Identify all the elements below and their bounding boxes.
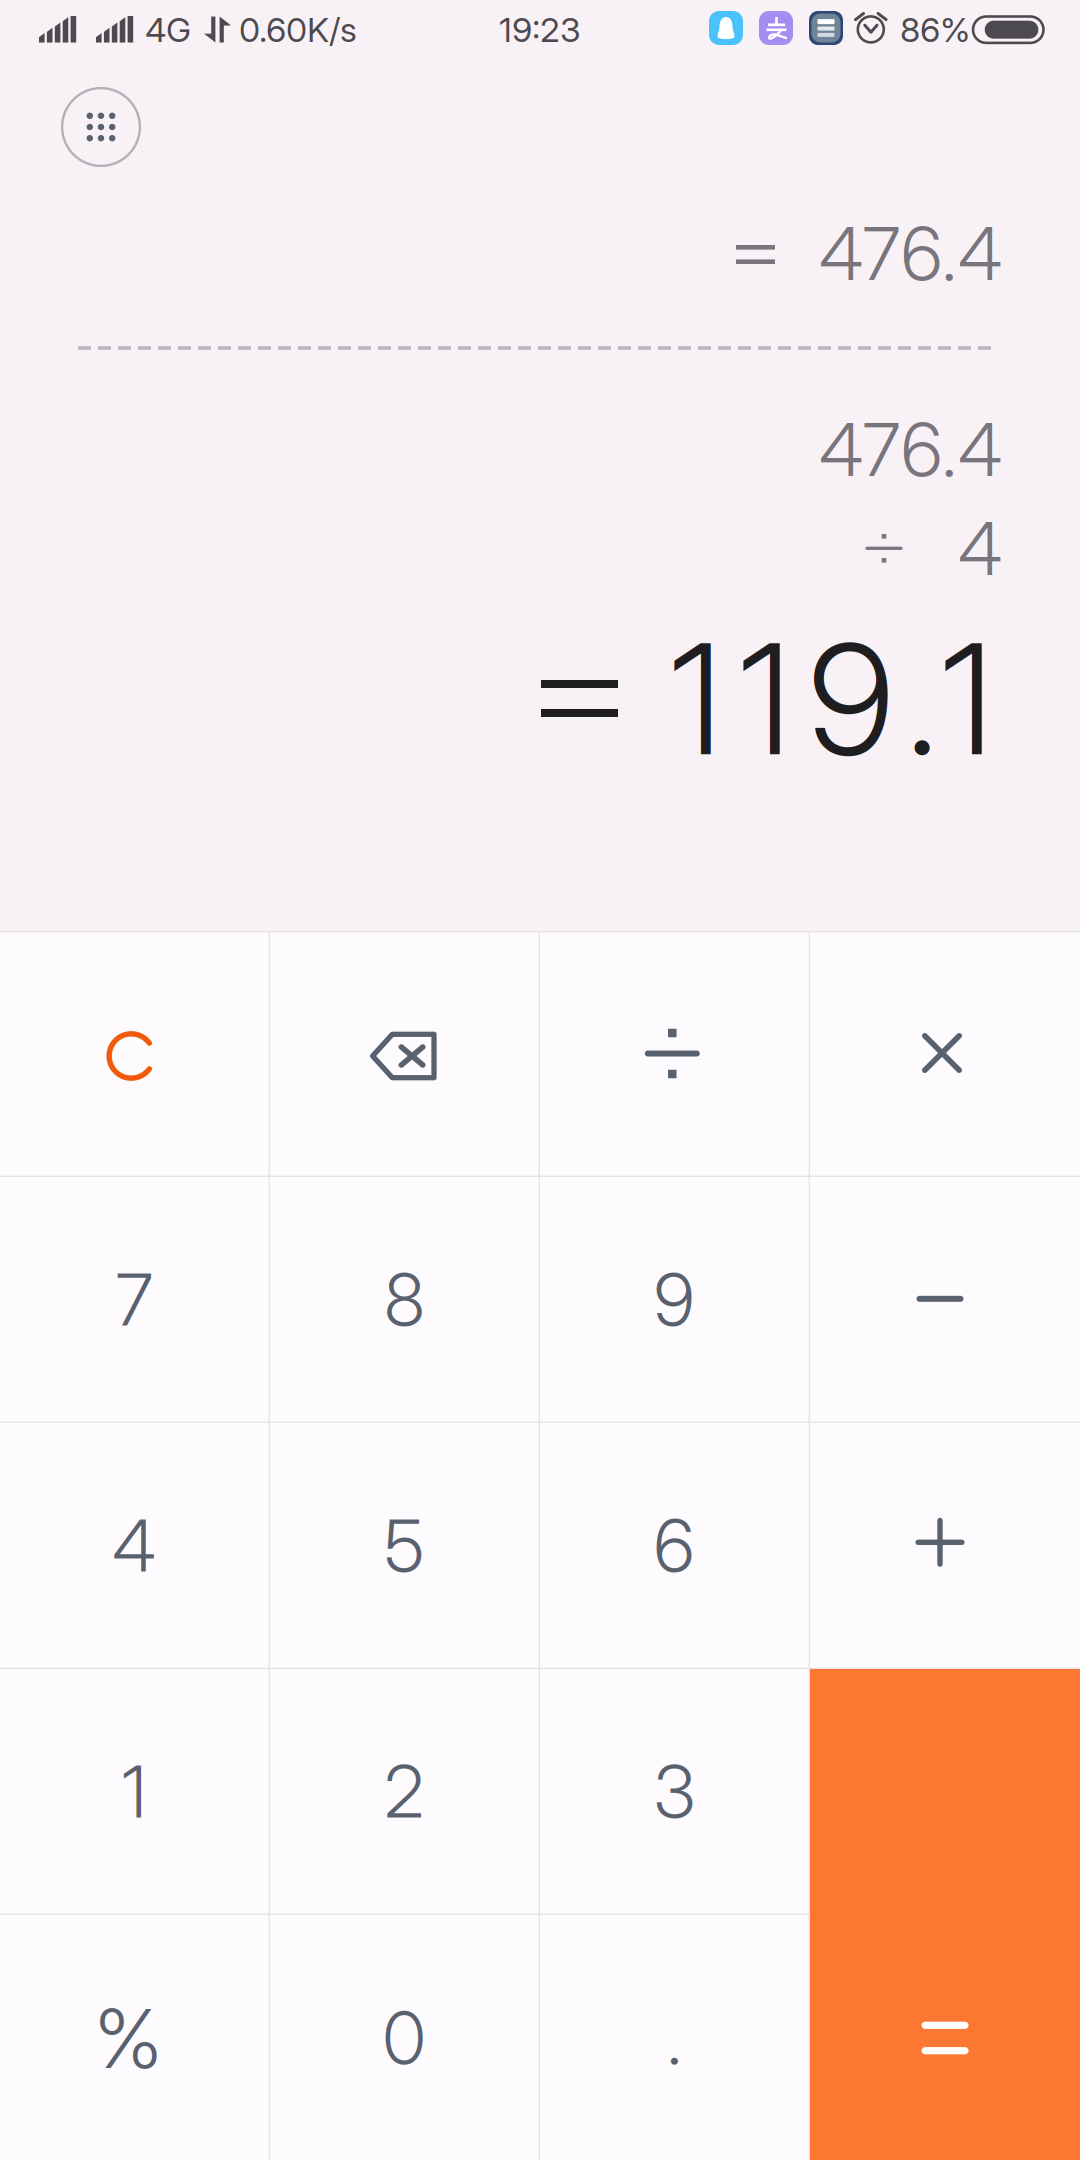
button[interactable]: Apps [58, 84, 144, 170]
staticText: % [95, 1989, 162, 2088]
staticText: 7 [116, 1256, 153, 1343]
staticText: 3 [654, 1748, 695, 1835]
staticText: . [667, 1994, 682, 2081]
button[interactable]: 9 [540, 1177, 809, 1422]
button[interactable]: 4 [0, 1423, 269, 1668]
button[interactable]: 3 [540, 1669, 809, 1914]
button[interactable]: 7 [0, 1177, 269, 1422]
button[interactable]: 1 [0, 1669, 269, 1914]
button[interactable]: 8 [270, 1177, 539, 1422]
button[interactable]: 5 [270, 1423, 539, 1668]
button[interactable]: Equals [810, 1669, 1080, 2160]
button[interactable]: Clear [0, 932, 269, 1176]
staticText: 0 [383, 1994, 426, 2081]
staticText: 19:23 [499, 9, 581, 50]
button[interactable]: Multiply [810, 932, 1080, 1176]
staticText: 9 [654, 1256, 695, 1343]
button[interactable]: % [0, 1915, 269, 2160]
staticText: 4 [958, 504, 1002, 593]
staticText: 86% [900, 9, 970, 50]
button[interactable]: 0 [270, 1915, 539, 2160]
button[interactable]: Minus [810, 1177, 1080, 1422]
staticText: 2 [384, 1748, 424, 1835]
staticText: 8 [384, 1256, 424, 1343]
button[interactable]: 6 [540, 1423, 809, 1668]
staticText: 4G [145, 9, 191, 50]
button[interactable]: Divide [540, 932, 809, 1176]
staticText: 1 [122, 1748, 147, 1835]
button[interactable]: Plus [810, 1423, 1080, 1668]
staticText: 5 [384, 1502, 424, 1589]
button[interactable]: Delete [270, 932, 539, 1176]
staticText: 476.4 [819, 405, 1002, 494]
button[interactable]: . [540, 1915, 809, 2160]
button[interactable]: 2 [270, 1669, 539, 1914]
staticText: 0.60K/s [239, 9, 357, 50]
staticText: 476.4 [819, 209, 1002, 298]
staticText: 6 [654, 1502, 695, 1589]
staticText: 4 [112, 1502, 156, 1589]
staticText: 119.1 [670, 607, 993, 791]
